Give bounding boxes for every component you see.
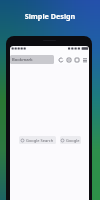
- button[interactable]: Refresh: [57, 55, 65, 64]
- button[interactable]: Google Search: [19, 136, 56, 144]
- button[interactable]: More options: [81, 55, 89, 64]
- button[interactable]: Tabs: [73, 55, 81, 64]
- button[interactable]: Google: [60, 136, 81, 144]
- button[interactable]: Share: [65, 55, 73, 64]
- staticText: Bookmark: [12, 57, 33, 63]
- staticText: Google: [66, 138, 80, 143]
- staticText: Google Search: [26, 138, 54, 143]
- staticText: Simple Design: [0, 11, 100, 21]
- button[interactable]: Bookmark: [10, 55, 54, 64]
